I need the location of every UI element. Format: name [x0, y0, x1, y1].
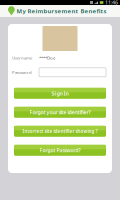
- button[interactable]: Incorrect site identifier showing ?: [14, 126, 106, 137]
- staticText: Incorrect site identifier showing ?: [22, 128, 97, 134]
- staticText: 11:46: [105, 0, 118, 6]
- staticText: ****Doe: [39, 55, 55, 61]
- staticText: Forgot your site identifier?: [29, 109, 90, 116]
- staticText: My Reimbursement Benefits: [16, 7, 106, 15]
- staticText: Password: [12, 69, 32, 75]
- button[interactable]: Forgot your site identifier?: [14, 107, 106, 118]
- button[interactable]: Sign In: [14, 88, 106, 99]
- staticText: Forgot Password?: [39, 147, 80, 153]
- staticText: Username: [12, 55, 32, 61]
- staticText: Sign In: [51, 90, 68, 97]
- button[interactable]: Forgot Password?: [14, 145, 106, 156]
